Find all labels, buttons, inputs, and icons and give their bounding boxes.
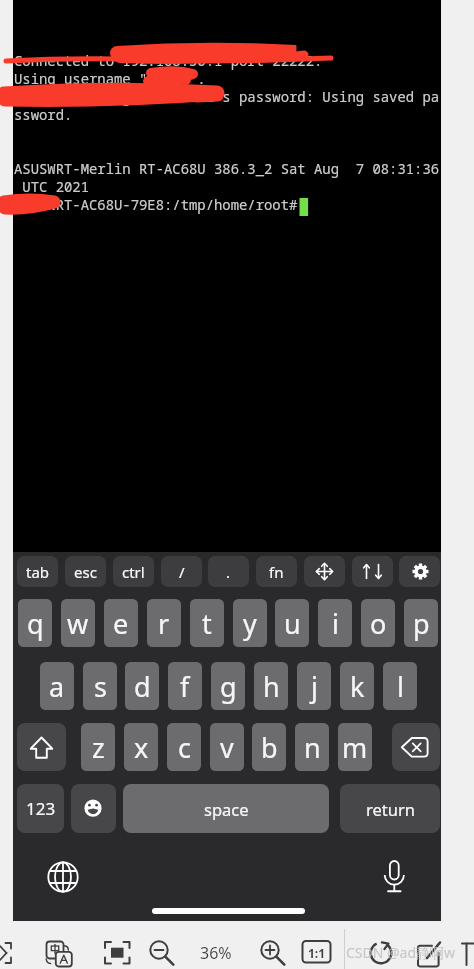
button[interactable]: tab (17, 556, 58, 587)
staticText: return (366, 798, 415, 820)
staticText: Connected to 192.168.50.1 port 22222. (14, 51, 323, 70)
staticText: space (204, 798, 249, 820)
button[interactable] (17, 723, 66, 771)
button[interactable] (392, 723, 440, 771)
staticText: y (243, 605, 257, 642)
staticText: 123 (26, 797, 56, 820)
staticText: laogewangluo@gmail.com12's password: Usi… (14, 87, 440, 106)
button[interactable] (0, 937, 32, 969)
staticText: l (397, 668, 404, 705)
staticText: d (134, 668, 151, 705)
button[interactable]: q (18, 599, 52, 647)
staticText: j (311, 668, 318, 705)
staticText: f (180, 668, 190, 705)
button[interactable]: k (340, 662, 374, 710)
staticText: o (370, 605, 387, 642)
button[interactable]: w (61, 599, 95, 647)
button[interactable]: . (208, 556, 249, 587)
button[interactable]: n (295, 723, 329, 771)
staticText: ASUSWRT-AC68U-79E8:/tmp/home/root# (14, 195, 298, 214)
staticText: k (350, 668, 365, 705)
staticText: CSDN @ad静啊w (346, 943, 456, 962)
button[interactable]: d (125, 662, 159, 710)
button[interactable]: s (83, 662, 117, 710)
staticText: v (220, 729, 234, 766)
staticText: t (202, 605, 212, 642)
staticText: s (94, 668, 107, 705)
button[interactable] (298, 937, 330, 969)
button[interactable]: esc (65, 556, 106, 587)
staticText: b (261, 729, 278, 766)
button[interactable] (366, 937, 398, 969)
button[interactable]: z (81, 723, 115, 771)
button[interactable]: fn (256, 556, 297, 587)
staticText: u (284, 605, 301, 642)
staticText: n (304, 729, 321, 766)
button[interactable]: a (40, 662, 74, 710)
button[interactable] (44, 858, 82, 896)
button[interactable] (352, 556, 393, 587)
staticText: ssword. (14, 105, 73, 124)
staticText: UTC 2021 (14, 177, 90, 196)
button[interactable] (257, 937, 289, 969)
staticText: ASUSWRT-Merlin RT-AC68U 386.3_2 Sat Aug … (14, 159, 440, 178)
button[interactable]: g (211, 662, 245, 710)
button[interactable]: l (383, 662, 417, 710)
button[interactable]: y (233, 599, 267, 647)
button[interactable]: o (361, 599, 395, 647)
staticText: 1:1 (308, 945, 326, 961)
staticText: esc (74, 562, 97, 582)
button[interactable]: ctrl (113, 556, 154, 587)
button[interactable]: h (254, 662, 288, 710)
staticText: x (134, 729, 149, 766)
button[interactable]: r (147, 599, 181, 647)
staticText: . (226, 562, 231, 582)
button[interactable]: / (161, 556, 202, 587)
button[interactable] (146, 937, 178, 969)
button[interactable] (376, 856, 413, 896)
staticText: / (179, 562, 185, 582)
button[interactable]: j (297, 662, 331, 710)
button[interactable]: i (318, 599, 352, 647)
button[interactable]: m (338, 723, 372, 771)
button[interactable]: p (404, 599, 438, 647)
button[interactable]: b (252, 723, 286, 771)
staticText: z (92, 729, 105, 766)
staticText: m (342, 729, 368, 766)
staticText: a (49, 668, 65, 705)
staticText: p (413, 605, 430, 642)
button[interactable] (455, 937, 474, 969)
staticText: q (27, 605, 44, 642)
button[interactable]: f (168, 662, 202, 710)
staticText: w (67, 605, 89, 642)
button[interactable] (100, 937, 132, 969)
staticText: i (332, 605, 339, 642)
staticText: tab (26, 562, 50, 582)
staticText: 36% (200, 942, 232, 964)
staticText: e (113, 605, 129, 642)
button[interactable]: u (275, 599, 309, 647)
button[interactable] (399, 556, 440, 587)
button[interactable]: 123 (17, 784, 64, 833)
staticText: r (158, 605, 170, 642)
button[interactable]: return (340, 784, 440, 833)
button[interactable] (304, 556, 345, 587)
button[interactable]: t (190, 599, 224, 647)
staticText: Using username "laoge". (14, 69, 206, 88)
staticText: c (178, 729, 191, 766)
button[interactable]: v (210, 723, 244, 771)
button[interactable]: c (167, 723, 201, 771)
button[interactable]: space (123, 784, 329, 833)
staticText: ctrl (122, 562, 145, 582)
button[interactable] (71, 784, 116, 833)
button[interactable]: e (104, 599, 138, 647)
button[interactable] (412, 937, 444, 969)
button[interactable]: x (124, 723, 158, 771)
staticText: fn (269, 562, 284, 582)
staticText: h (263, 668, 280, 705)
staticText: g (220, 668, 237, 705)
button[interactable] (40, 937, 72, 969)
